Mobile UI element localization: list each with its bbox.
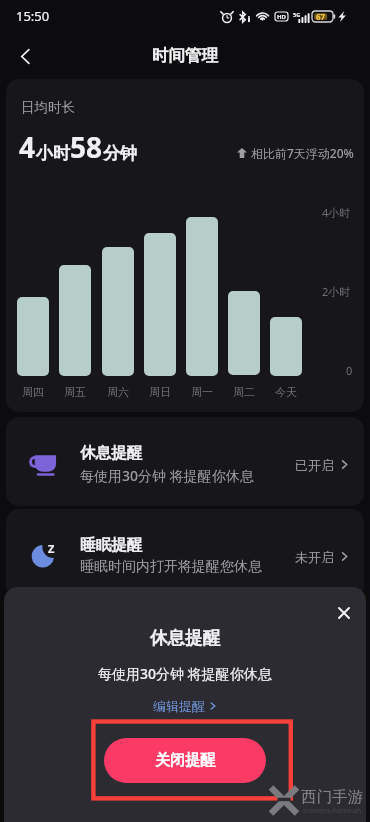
staticText: 周六 xyxy=(107,385,129,399)
button[interactable]: Close xyxy=(329,598,359,628)
staticText: 周日 xyxy=(149,385,171,399)
staticText: 关闭提醒 xyxy=(155,751,215,770)
staticText: 0 xyxy=(346,363,353,378)
staticText: 睡眠提醒 xyxy=(80,535,142,555)
staticText: HD xyxy=(277,13,286,21)
staticText: 时间管理 xyxy=(152,45,218,66)
staticText: 编辑提醒 xyxy=(153,698,205,714)
staticText: 周一 xyxy=(191,385,213,399)
staticText: 未开启 xyxy=(295,549,334,565)
button[interactable]: 关闭提醒 xyxy=(104,738,266,783)
staticText: 4小时 xyxy=(322,205,351,220)
staticText: 周四 xyxy=(22,385,44,399)
staticText: siemens-home.cn xyxy=(303,806,362,816)
staticText: 小时 xyxy=(36,143,70,164)
staticText: 每使用30分钟 将提醒你休息 xyxy=(80,466,254,485)
staticText: 已开启 xyxy=(295,457,334,473)
button[interactable]: Back xyxy=(4,35,46,77)
staticText: 休息提醒 xyxy=(150,627,220,649)
staticText: 每使用30分钟 将提醒你休息 xyxy=(98,664,272,683)
staticText: 周二 xyxy=(233,385,255,399)
staticText: 15:50 xyxy=(16,7,50,25)
staticText: 5G xyxy=(293,11,301,18)
staticText: 睡眠时间内打开将提醒您休息 xyxy=(80,558,262,576)
staticText: 2小时 xyxy=(322,284,351,299)
staticText: 西门手游 xyxy=(301,787,363,807)
staticText: 日均时长 xyxy=(21,99,75,116)
button[interactable]: 休息提醒 xyxy=(6,417,364,506)
staticText: Z xyxy=(48,541,55,556)
staticText: 67 xyxy=(316,11,326,22)
button[interactable]: 编辑提醒 xyxy=(145,695,226,717)
staticText: 4 xyxy=(19,128,36,166)
staticText: 休息提醒 xyxy=(80,443,142,463)
staticText: 周五 xyxy=(64,385,86,399)
staticText: 58 xyxy=(70,128,103,166)
button[interactable]: Z xyxy=(6,509,364,598)
staticText: 分钟 xyxy=(103,143,137,164)
staticText: 今天 xyxy=(275,385,297,399)
staticText: 相比前7天浮动20% xyxy=(251,145,354,161)
